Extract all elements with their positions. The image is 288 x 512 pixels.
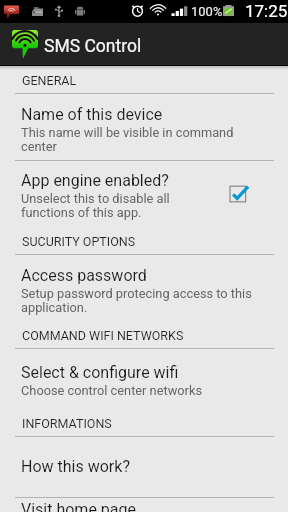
staticText: This name will be visible in command cen… [21, 125, 252, 154]
staticText: 100% [191, 4, 223, 19]
staticText: Access password [21, 266, 147, 285]
staticText: Visit home page [21, 500, 137, 512]
staticText: App engine enabled? [21, 171, 169, 190]
button[interactable]: App engine enabled toggle [0, 161, 288, 227]
staticText: Name of this device [21, 105, 163, 124]
button[interactable]: Visit home page [0, 498, 288, 512]
staticText: Select & configure wifi [21, 363, 179, 382]
staticText: 17:25 [245, 1, 288, 21]
button[interactable]: SMS Control [0, 23, 288, 65]
staticText: Choose control center networks [21, 383, 202, 398]
staticText: How this work? [21, 457, 130, 476]
staticText: Unselect this to disable all functions o… [21, 191, 197, 220]
button[interactable]: How this work? [0, 437, 288, 497]
button[interactable]: Name of this device [0, 94, 288, 160]
staticText: SMS Control [44, 36, 142, 57]
staticText: COMMAND WIFI NETWORKS [22, 328, 184, 343]
button[interactable]: Select & configure wifi [0, 349, 288, 409]
staticText: SUCURITY OPTIONS [22, 234, 136, 249]
button[interactable]: Access password [0, 255, 288, 321]
staticText: GENERAL [22, 73, 77, 88]
staticText: Setup password protecing access to this … [21, 286, 252, 315]
staticText: INFORMATIONS [22, 416, 112, 431]
